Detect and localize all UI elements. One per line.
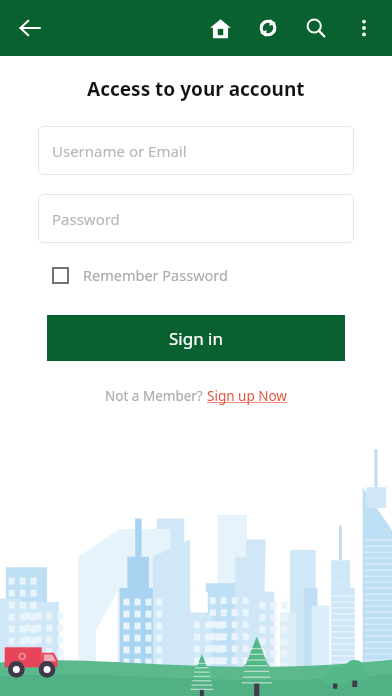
button[interactable]: Sign in (47, 315, 345, 361)
button[interactable]: Password (38, 194, 354, 243)
button[interactable]: Search (292, 4, 340, 52)
staticText: Remember Password (83, 265, 228, 285)
button[interactable]: Username or Email (38, 126, 354, 175)
staticText: Password (52, 209, 120, 229)
staticText: Not a Member? (105, 387, 207, 405)
staticText: Sign in (169, 327, 223, 350)
button[interactable]: Refresh (244, 4, 292, 52)
staticText: Access to your account (87, 76, 305, 102)
button[interactable]: Sign up Now (207, 387, 287, 405)
button[interactable]: More options (340, 4, 388, 52)
staticText: Sign up Now (207, 387, 287, 405)
button[interactable]: Home (196, 4, 244, 52)
button[interactable]: Remember Password (52, 265, 228, 285)
button[interactable]: Back (6, 4, 54, 52)
staticText: Username or Email (52, 141, 187, 161)
